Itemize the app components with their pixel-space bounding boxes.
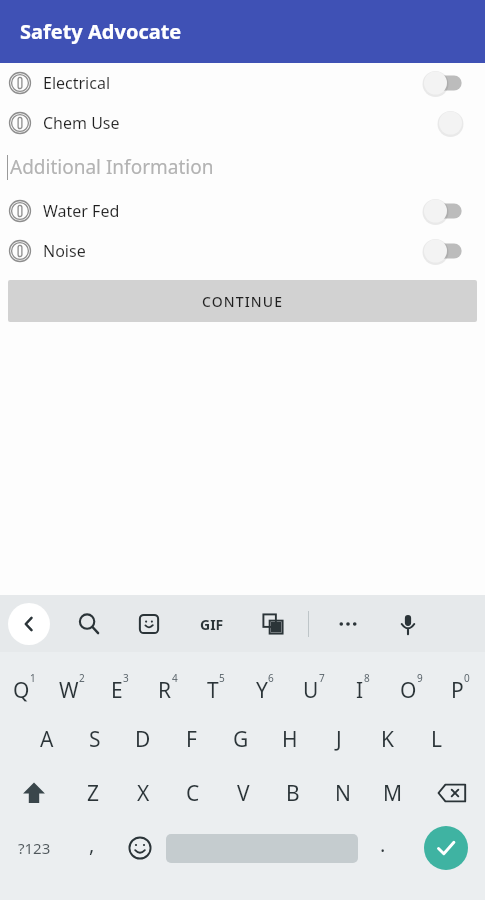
button[interactable]: T	[192, 658, 240, 712]
button[interactable]: Q	[0, 658, 48, 712]
staticText: Electrical	[43, 72, 111, 94]
button[interactable]: More options	[331, 607, 365, 641]
staticText: 2	[79, 671, 85, 685]
staticText: 1	[30, 671, 36, 685]
staticText: GIF	[200, 615, 224, 634]
staticText: P	[451, 676, 464, 705]
button[interactable]: L	[412, 712, 461, 766]
staticText: 3	[123, 671, 129, 685]
staticText: Water Fed	[43, 200, 120, 222]
staticText: V	[237, 779, 250, 808]
staticText: L	[431, 725, 443, 754]
staticText: B	[286, 779, 300, 808]
button[interactable]: CONTINUE	[8, 280, 477, 322]
staticText: C	[186, 779, 200, 808]
staticText: 6	[268, 671, 274, 685]
button[interactable]: C	[168, 766, 218, 820]
staticText: 5	[219, 671, 225, 685]
button[interactable]: Water Fed	[0, 191, 485, 231]
button[interactable]: J	[314, 712, 363, 766]
button[interactable]: R	[144, 658, 192, 712]
button[interactable]: Electrical toggle	[423, 68, 473, 98]
button[interactable]: I	[338, 658, 387, 712]
button[interactable]: ,	[69, 820, 115, 876]
staticText: M	[383, 779, 403, 808]
button[interactable]: Voice input	[391, 607, 425, 641]
button[interactable]: N	[318, 766, 368, 820]
staticText: H	[282, 725, 298, 754]
button[interactable]: Emoji	[115, 820, 164, 876]
button[interactable]: Noise	[0, 231, 485, 271]
staticText: 7	[319, 671, 325, 685]
staticText: Z	[87, 779, 100, 808]
button[interactable]: B	[268, 766, 318, 820]
button[interactable]: S	[71, 712, 119, 766]
button[interactable]: O	[387, 658, 436, 712]
button[interactable]: Noise toggle	[423, 236, 473, 266]
staticText: K	[381, 725, 394, 754]
staticText: 0	[464, 671, 470, 685]
staticText: D	[135, 725, 151, 754]
staticText: J	[336, 725, 342, 754]
staticText: 8	[364, 671, 370, 685]
staticText: I	[356, 676, 364, 705]
button[interactable]: GIF	[194, 606, 230, 642]
staticText: U	[303, 676, 319, 705]
button[interactable]: Back	[8, 603, 50, 645]
button[interactable]: D	[119, 712, 167, 766]
button[interactable]: Translate	[256, 607, 290, 641]
staticText: G	[233, 725, 249, 754]
staticText: Q	[13, 676, 30, 705]
button[interactable]: X	[118, 766, 168, 820]
button[interactable]: M	[368, 766, 418, 820]
button[interactable]: W	[48, 658, 96, 712]
button[interactable]: Electrical	[0, 63, 485, 103]
staticText: O	[400, 676, 417, 705]
staticText: A	[40, 725, 54, 754]
staticText: Noise	[43, 240, 86, 262]
staticText: Chem Use	[43, 112, 120, 134]
button[interactable]: Y	[240, 658, 289, 712]
button[interactable]: Space	[164, 820, 360, 876]
button[interactable]: F	[167, 712, 216, 766]
button[interactable]: G	[216, 712, 265, 766]
button[interactable]: V	[218, 766, 268, 820]
button[interactable]: P	[436, 658, 485, 712]
staticText: N	[335, 779, 351, 808]
button[interactable]: Search	[72, 607, 106, 641]
button[interactable]: E	[96, 658, 144, 712]
staticText: X	[137, 779, 150, 808]
button[interactable]: Chem Use toggle	[423, 108, 473, 138]
staticText: W	[59, 676, 79, 705]
staticText: ,	[89, 831, 95, 858]
button[interactable]: Enter	[406, 820, 485, 876]
staticText: E	[111, 676, 123, 705]
button[interactable]: U	[289, 658, 338, 712]
staticText: Safety Advocate	[20, 18, 182, 45]
staticText: 9	[417, 671, 423, 685]
button[interactable]: Chem Use	[0, 103, 485, 143]
button[interactable]: .	[360, 820, 406, 876]
button[interactable]: Shift	[0, 766, 68, 820]
staticText: Y	[256, 676, 268, 705]
staticText: 4	[172, 671, 178, 685]
button[interactable]: K	[363, 712, 412, 766]
button[interactable]: Water Fed toggle	[423, 196, 473, 226]
button[interactable]: H	[265, 712, 314, 766]
button[interactable]: Additional Information	[0, 143, 485, 191]
staticText: .	[380, 831, 386, 858]
staticText: S	[89, 725, 101, 754]
button[interactable]: A	[23, 712, 71, 766]
button[interactable]: Backspace	[418, 766, 485, 820]
staticText: F	[186, 725, 197, 754]
staticText: T	[207, 676, 219, 705]
staticText: CONTINUE	[202, 292, 284, 311]
button[interactable]: Z	[68, 766, 118, 820]
staticText: ?123	[18, 838, 51, 858]
staticText: Additional Information	[10, 154, 214, 180]
staticText: R	[158, 676, 172, 705]
button[interactable]: Stickers	[132, 607, 166, 641]
button[interactable]: ?123	[0, 820, 69, 876]
